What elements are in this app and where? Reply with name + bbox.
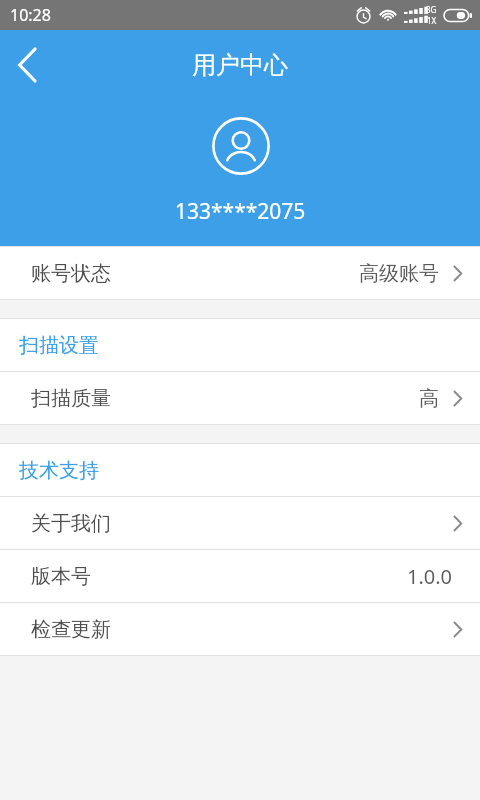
staticText: 高级账号: [359, 261, 439, 286]
button[interactable]: Back: [0, 37, 56, 93]
staticText: 133****2075: [175, 197, 306, 226]
staticText: 1.0.0: [407, 563, 453, 590]
button[interactable]: 版本号: [0, 550, 480, 602]
staticText: 扫描质量: [31, 386, 111, 411]
staticText: 1X: [427, 15, 437, 26]
staticText: 3G: [426, 4, 437, 15]
staticText: 版本号: [31, 564, 91, 589]
staticText: 账号状态: [31, 261, 111, 286]
staticText: 用户中心: [192, 50, 288, 80]
button[interactable]: 账号状态: [0, 247, 480, 299]
button[interactable]: 扫描质量: [0, 372, 480, 424]
staticText: 10:28: [10, 4, 51, 26]
staticText: 关于我们: [31, 511, 111, 536]
staticText: 技术支持: [19, 458, 99, 483]
staticText: 高: [419, 386, 439, 411]
button[interactable]: 检查更新: [0, 603, 480, 655]
staticText: 扫描设置: [19, 333, 99, 358]
button[interactable]: 关于我们: [0, 497, 480, 549]
staticText: 检查更新: [31, 617, 111, 642]
